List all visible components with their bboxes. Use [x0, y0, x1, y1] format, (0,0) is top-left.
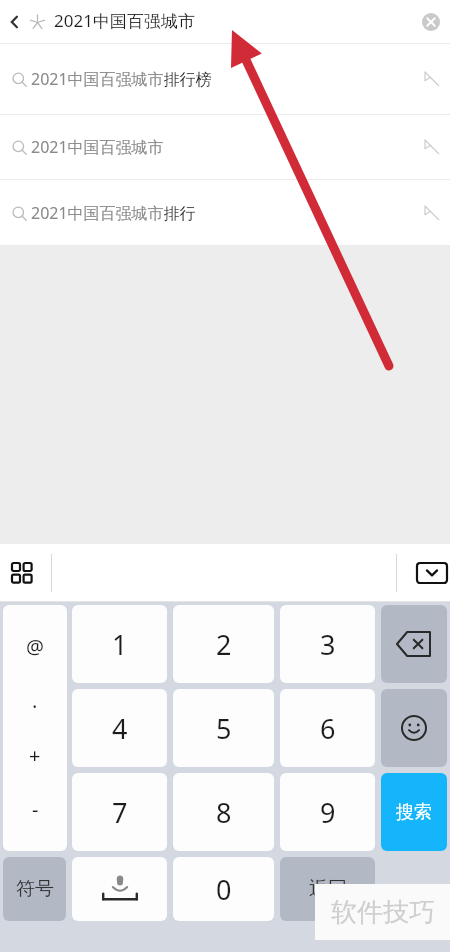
button[interactable]: Back: [0, 7, 30, 37]
button[interactable]: Keyboard layouts: [2, 553, 42, 593]
staticText: .: [32, 687, 38, 714]
button[interactable]: Backspace: [381, 605, 447, 683]
button[interactable]: 0: [173, 857, 274, 921]
button[interactable]: 搜索: [381, 773, 447, 851]
staticText: -: [32, 796, 39, 823]
staticText: 5: [216, 710, 232, 747]
button[interactable]: Insert suggestion: [417, 198, 447, 228]
staticText: 1: [112, 626, 128, 663]
button[interactable]: Clear: [414, 5, 448, 39]
staticText: 6: [320, 710, 336, 747]
button[interactable]: 5: [173, 689, 274, 767]
staticText: 返回: [309, 877, 347, 901]
button[interactable]: Favorite: [22, 7, 52, 37]
button[interactable]: 9: [280, 773, 375, 851]
button[interactable]: 符号: [3, 857, 66, 921]
button[interactable]: 返回: [280, 857, 375, 921]
button[interactable]: Hide keyboard: [410, 551, 450, 595]
button[interactable]: 3: [280, 605, 375, 683]
button[interactable]: Insert suggestion: [417, 132, 447, 162]
staticText: 8: [216, 794, 232, 831]
button[interactable]: Space: [72, 857, 167, 921]
button[interactable]: 2021中国百强城市排行: [0, 180, 450, 245]
staticText: 0: [216, 871, 232, 908]
staticText: 软件技巧: [331, 896, 435, 929]
staticText: 2021中国百强城市: [54, 9, 195, 32]
button[interactable]: 1: [72, 605, 167, 683]
staticText: 2021中国百强城市: [31, 136, 164, 158]
button[interactable]: 7: [72, 773, 167, 851]
button[interactable]: 8: [173, 773, 274, 851]
staticText: 搜索: [396, 801, 432, 824]
staticText: 7: [112, 794, 128, 831]
staticText: 符号: [16, 877, 54, 901]
button[interactable]: Symbols at dot plus minus: [3, 605, 67, 851]
button[interactable]: 6: [280, 689, 375, 767]
button[interactable]: 2021中国百强城市: [0, 115, 450, 179]
staticText: 2021中国百强城市排行榜: [31, 68, 212, 90]
button[interactable]: Insert suggestion: [417, 64, 447, 94]
staticText: @: [26, 633, 44, 660]
button[interactable]: 4: [72, 689, 167, 767]
button[interactable]: Emoji: [381, 689, 447, 767]
staticText: 9: [320, 794, 336, 831]
staticText: 2: [216, 626, 232, 663]
button[interactable]: 2021中国百强城市排行榜: [0, 44, 450, 114]
staticText: +: [29, 742, 41, 769]
staticText: 3: [320, 626, 336, 663]
button[interactable]: 2: [173, 605, 274, 683]
staticText: 2021中国百强城市排行: [31, 202, 196, 224]
staticText: 4: [112, 710, 128, 747]
